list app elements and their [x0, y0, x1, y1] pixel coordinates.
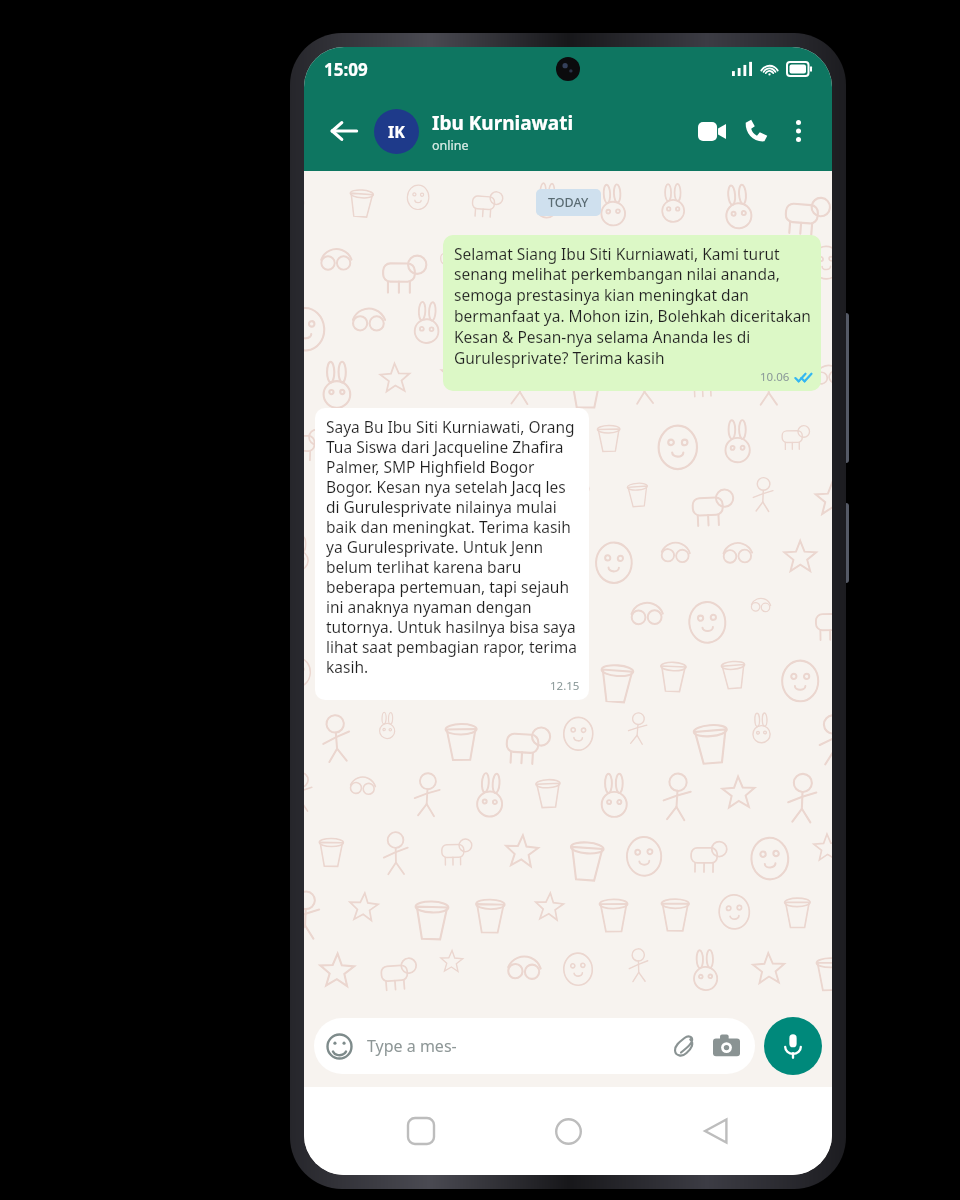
button[interactable]: Camera	[709, 1029, 743, 1063]
button[interactable]: Selamat Siang Ibu Siti Kurniawati, Kami …	[443, 235, 821, 391]
staticText: 15:09	[324, 58, 368, 81]
staticText: Selamat Siang Ibu Siti Kurniawati, Kami …	[454, 243, 812, 369]
staticText: 12.15	[550, 678, 580, 694]
staticText: IK	[388, 121, 405, 143]
button[interactable]: Video call	[690, 109, 734, 153]
button[interactable]: Saya Bu Ibu Siti Kurniawati, Orang Tua S…	[315, 408, 589, 700]
button[interactable]: IK	[374, 109, 690, 154]
button[interactable]: Voice message	[764, 1017, 822, 1075]
button[interactable]: More options	[778, 111, 818, 151]
staticText: 10.06	[760, 369, 790, 385]
button[interactable]: Recent apps	[390, 1100, 452, 1162]
button[interactable]: Attach	[667, 1029, 701, 1063]
staticText: online	[432, 137, 469, 154]
button[interactable]: Back	[320, 107, 368, 155]
button[interactable]: Back	[685, 1100, 747, 1162]
button[interactable]: Home	[537, 1100, 599, 1162]
staticText: Saya Bu Ibu Siti Kurniawati, Orang Tua S…	[326, 416, 580, 678]
staticText: Type a mes-	[367, 1035, 457, 1057]
button[interactable]: Voice call	[734, 109, 778, 153]
button[interactable]: Type a mes-	[314, 1018, 755, 1074]
staticText: TODAY	[548, 194, 589, 211]
staticText: Ibu Kurniawati	[432, 110, 574, 136]
